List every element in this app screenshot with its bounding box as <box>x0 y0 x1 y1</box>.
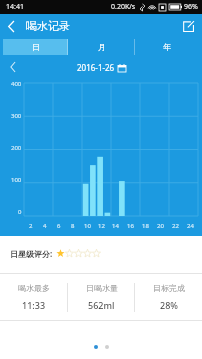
staticText: 日 <box>32 42 40 52</box>
staticText: 6 <box>57 222 61 230</box>
button[interactable]: 日喝水量 <box>68 274 135 320</box>
staticText: 20 <box>157 222 164 230</box>
staticText: 喝水最多 <box>18 283 50 293</box>
staticText: 8 <box>71 222 75 230</box>
button[interactable]: Edit <box>175 17 202 36</box>
staticText: 目标完成 <box>153 283 185 293</box>
staticText: 24 <box>187 222 194 230</box>
staticText: 年 <box>163 42 171 52</box>
staticText: 14:41 <box>6 2 24 12</box>
staticText: 4 <box>43 222 47 230</box>
button[interactable]: 年 <box>135 39 199 55</box>
staticText: 12 <box>98 222 105 230</box>
staticText: 100 <box>11 176 22 184</box>
staticText: 22 <box>172 222 179 230</box>
staticText: 喝水记录 <box>26 19 70 33</box>
staticText: 18 <box>142 222 149 230</box>
staticText: 28% <box>160 299 178 311</box>
staticText: 2016-1-26 <box>77 62 115 73</box>
staticText: 562ml <box>88 299 115 311</box>
button[interactable]: 喝水最多 <box>0 274 68 320</box>
staticText: 200 <box>11 144 22 152</box>
staticText: 日喝水量 <box>86 283 118 293</box>
staticText: 300 <box>11 112 22 120</box>
button[interactable]: 2016-1-26 <box>77 62 126 73</box>
button[interactable]: Back <box>0 18 23 35</box>
staticText: 日星级评分: <box>10 248 53 259</box>
staticText: 2 <box>29 222 33 230</box>
staticText: 0.20K/s <box>111 2 136 12</box>
staticText: 96% <box>184 2 198 12</box>
staticText: 月 <box>98 42 106 52</box>
button[interactable]: Previous day <box>0 58 26 76</box>
staticText: 400 <box>11 80 22 88</box>
button[interactable]: 目标完成 <box>135 274 202 320</box>
staticText: 11:33 <box>22 299 46 311</box>
staticText: 14 <box>112 222 119 230</box>
button[interactable]: 日 <box>3 39 68 55</box>
staticText: 0 <box>18 208 22 216</box>
staticText: 16 <box>127 222 134 230</box>
staticText: 10 <box>84 222 91 230</box>
button[interactable]: 月 <box>68 39 135 55</box>
